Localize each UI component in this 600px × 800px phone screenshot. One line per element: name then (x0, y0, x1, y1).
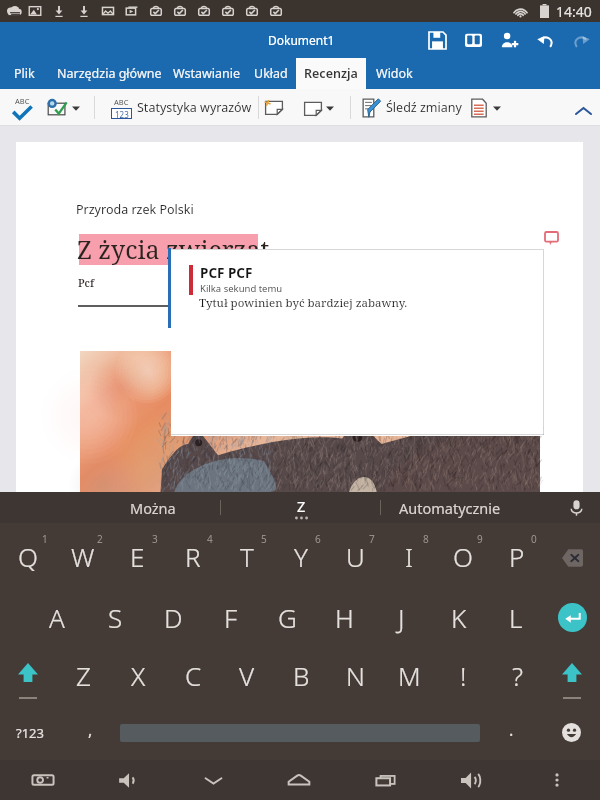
button[interactable]: Recenzja (296, 58, 366, 89)
button[interactable]: L (487, 589, 544, 646)
button[interactable]: B (274, 646, 328, 705)
button[interactable]: . (480, 705, 542, 760)
button[interactable]: 1 (0, 523, 55, 589)
staticText: K (451, 600, 467, 635)
staticText: 2 (97, 532, 103, 546)
button[interactable]: A (28, 589, 86, 646)
staticText: H (335, 600, 354, 635)
button[interactable]: Z (56, 646, 111, 705)
button[interactable]: Collapse ribbon (566, 89, 600, 126)
button[interactable]: 0 (490, 523, 544, 589)
button[interactable]: G (259, 589, 316, 646)
button[interactable]: Plik (4, 58, 45, 89)
button[interactable]: X (111, 646, 166, 705)
staticText: 8 (423, 532, 429, 546)
staticText: F (224, 600, 238, 635)
button[interactable]: Redo (563, 22, 599, 58)
button[interactable]: Display for review (468, 91, 508, 124)
button[interactable]: Automatycznie (376, 492, 524, 523)
button[interactable]: 8 (382, 523, 436, 589)
button[interactable]: H (316, 589, 373, 646)
button[interactable]: Wstawianie (168, 58, 245, 89)
button[interactable]: Read mode (455, 22, 491, 58)
staticText: , (88, 719, 93, 741)
button[interactable]: 6 (274, 523, 328, 589)
button[interactable]: 3 (110, 523, 165, 589)
button[interactable]: Share (491, 22, 527, 58)
button[interactable]: F (202, 589, 259, 646)
staticText: L (509, 600, 523, 635)
button[interactable]: 4 (165, 523, 220, 589)
button[interactable]: Hide keyboard (170, 760, 256, 800)
staticText: I (405, 539, 414, 574)
staticText: 14:40 (556, 2, 592, 21)
button[interactable]: , (60, 705, 120, 760)
button[interactable]: New comment (258, 91, 290, 124)
button[interactable]: Shift (544, 646, 600, 705)
button[interactable]: More options (514, 760, 600, 800)
staticText: ABC (114, 97, 129, 107)
button[interactable]: Recents (342, 760, 428, 800)
button[interactable]: J (373, 589, 430, 646)
button[interactable]: Widok (366, 58, 422, 89)
button[interactable]: Śledź zmiany (362, 91, 462, 124)
staticText: 0 (531, 532, 537, 546)
staticText: Y (294, 539, 308, 574)
staticText: 3 (152, 532, 158, 546)
button[interactable]: 7 (328, 523, 382, 589)
button[interactable]: Undo (527, 22, 563, 58)
button[interactable]: Home (256, 760, 342, 800)
button[interactable]: Z (227, 492, 375, 523)
button[interactable]: Translate (44, 91, 84, 124)
button[interactable]: Save (419, 22, 455, 58)
button[interactable]: Volume up (428, 760, 514, 800)
button[interactable]: Volume down (85, 760, 170, 800)
button[interactable]: S (86, 589, 144, 646)
button[interactable]: ABC (108, 91, 252, 124)
button[interactable]: ?123 (0, 705, 60, 760)
staticText: ? (512, 658, 523, 693)
staticText: 123 (115, 109, 129, 118)
button[interactable]: Można (79, 492, 227, 523)
button[interactable]: M (382, 646, 436, 705)
button[interactable]: Backspace (544, 523, 600, 589)
staticText: A (49, 600, 65, 635)
staticText: Można (130, 498, 176, 518)
staticText: P (509, 539, 525, 574)
staticText: 7 (369, 532, 375, 546)
button[interactable]: ? (490, 646, 544, 705)
button[interactable]: D (144, 589, 202, 646)
button[interactable]: Narzędzia główne (48, 58, 170, 89)
staticText: Układ (254, 65, 288, 82)
button[interactable]: Układ (247, 58, 295, 89)
button[interactable]: N (328, 646, 382, 705)
staticText: 1 (42, 532, 48, 546)
staticText: Narzędzia główne (57, 65, 162, 82)
button[interactable]: 2 (55, 523, 110, 589)
button[interactable]: Show comments (300, 91, 340, 124)
staticText: Statystyka wyrazów (137, 99, 252, 116)
staticText: Z (297, 496, 306, 516)
staticText: O (453, 539, 473, 574)
staticText: B (293, 658, 310, 693)
button[interactable]: ! (436, 646, 490, 705)
staticText: Z życia zwierząt (77, 232, 270, 266)
staticText: Pcf (78, 276, 95, 290)
button[interactable]: Screenshot (0, 760, 85, 800)
staticText: S (108, 600, 123, 635)
button[interactable]: Spelling and grammar (5, 91, 39, 124)
button[interactable]: Voice input (552, 492, 600, 523)
staticText: 6 (315, 532, 321, 546)
staticText: R (185, 539, 201, 574)
button[interactable]: K (430, 589, 487, 646)
button[interactable]: 9 (436, 523, 490, 589)
staticText: T (240, 539, 254, 574)
button[interactable]: Emoji (542, 705, 600, 760)
button[interactable]: 5 (220, 523, 274, 589)
button[interactable]: Shift (0, 646, 56, 705)
button[interactable]: Enter (544, 589, 600, 646)
button[interactable]: V (220, 646, 274, 705)
button[interactable]: C (166, 646, 220, 705)
staticText: Plik (14, 65, 35, 82)
